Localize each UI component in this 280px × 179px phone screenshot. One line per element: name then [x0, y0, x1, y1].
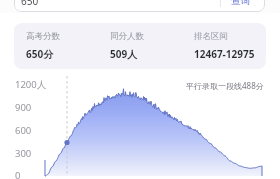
staticText: 排名区间 [194, 31, 228, 42]
staticText: 高考分数 [26, 31, 60, 42]
staticText: 300 [15, 147, 32, 160]
staticText: 平行录取一段线488分 [186, 80, 264, 91]
staticText: 1200人 [15, 78, 47, 91]
staticText: 509人 [110, 47, 138, 61]
staticText: 查询 [231, 0, 250, 7]
staticText: 650分 [26, 47, 54, 61]
staticText: 900 [15, 101, 32, 114]
staticText: 12467-12975 [194, 47, 255, 61]
staticText: 同分人数 [110, 31, 144, 42]
button[interactable]: 650 [14, 0, 265, 12]
staticText: 650 [21, 0, 39, 8]
staticText: 0 [15, 169, 21, 179]
staticText: 600 [15, 124, 32, 137]
